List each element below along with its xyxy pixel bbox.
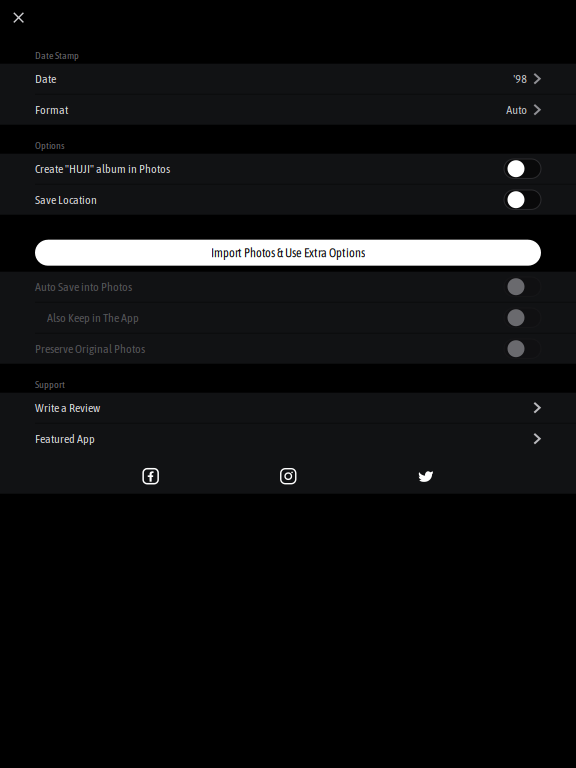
button[interactable]: Featured App: [0, 424, 576, 454]
button[interactable]: Instagram: [280, 468, 296, 484]
staticText: Date: [35, 72, 56, 86]
staticText: Date Stamp: [35, 50, 79, 61]
staticText: Also Keep in The App: [47, 311, 139, 325]
staticText: Support: [35, 379, 65, 390]
staticText: Options: [35, 140, 65, 151]
staticText: Import Photos & Use Extra Options: [211, 246, 365, 260]
button[interactable]: Format: [0, 95, 576, 125]
button[interactable]: Twitter: [418, 469, 433, 483]
button[interactable]: Create "HUJI" album in Photos: [0, 154, 576, 184]
button[interactable]: Write a Review: [0, 393, 576, 423]
staticText: Write a Review: [35, 401, 100, 415]
staticText: Auto: [506, 103, 527, 117]
button[interactable]: Facebook: [143, 468, 159, 484]
staticText: Format: [35, 103, 68, 117]
staticText: Auto Save into Photos: [35, 280, 132, 294]
button[interactable]: Date: [0, 64, 576, 94]
staticText: Featured App: [35, 432, 95, 446]
staticText: Create "HUJI" album in Photos: [35, 162, 170, 176]
button[interactable]: Preserve Original Photos: [0, 334, 576, 364]
button[interactable]: Close: [3, 3, 34, 35]
button[interactable]: Save Location: [0, 185, 576, 215]
button[interactable]: Auto Save into Photos: [0, 272, 576, 302]
button[interactable]: Import Photos & Use Extra Options: [35, 240, 541, 266]
staticText: Save Location: [35, 193, 97, 207]
staticText: Preserve Original Photos: [35, 342, 145, 356]
button[interactable]: Also Keep in The App: [0, 303, 576, 333]
staticText: '98: [513, 72, 527, 86]
